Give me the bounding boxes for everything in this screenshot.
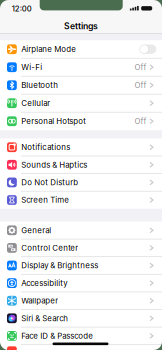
staticText: Siri & Search [21,313,68,323]
staticText: Off [134,80,146,90]
staticText: Notifications [21,142,70,152]
button[interactable]: Cellular [0,94,162,112]
button[interactable]: Screen Time [0,191,162,209]
button[interactable]: Do Not Disturb [0,174,162,191]
staticText: Screen Time [21,195,69,205]
staticText: Wi-Fi [21,62,42,72]
staticText: Wallpaper [21,296,58,305]
button[interactable]: Siri & Search [0,309,162,327]
staticText: Sounds & Haptics [21,160,87,169]
button[interactable]: Display & Brightness [0,257,162,274]
button[interactable]: General [0,221,162,239]
button[interactable]: Bluetooth [0,76,162,94]
button[interactable]: Wi-Fi [0,58,162,76]
button[interactable]: Notifications [0,138,162,156]
staticText: Control Center [21,243,78,253]
staticText: Airplane Mode [21,44,76,54]
button[interactable]: Wallpaper [0,292,162,309]
staticText: Bluetooth [21,80,58,90]
button[interactable]: Sounds & Haptics [0,156,162,174]
staticText: Off [134,62,146,72]
staticText: Display & Brightness [21,261,98,270]
button[interactable]: Accessibility [0,274,162,292]
button[interactable]: Face ID & Passcode [0,327,162,345]
staticText: Do Not Disturb [21,178,78,187]
button[interactable]: Airplane Mode [0,40,162,58]
staticText: Face ID & Passcode [21,331,93,341]
staticText: General [21,225,51,235]
staticText: Off [134,116,146,126]
staticText: 12:00 [12,4,32,13]
button[interactable]: Personal Hotspot [0,112,162,130]
staticText: Cellular [21,98,50,108]
button[interactable]: Control Center [0,239,162,257]
staticText: Accessibility [21,278,67,288]
staticText: Personal Hotspot [21,116,86,126]
staticText: Settings [64,21,98,31]
